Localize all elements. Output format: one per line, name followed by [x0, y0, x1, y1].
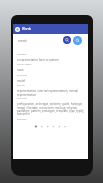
- button[interactable]: Pronounce: [73, 36, 82, 45]
- staticText: a representative form or pattern: [17, 58, 84, 62]
- other: App icon: [15, 27, 20, 32]
- staticText: Has Types: [17, 97, 84, 100]
- staticText: Part Of Speech: [17, 63, 84, 66]
- staticText: model: [17, 79, 84, 83]
- staticText: representation, internal representation,…: [17, 89, 84, 96]
- staticText: Synonyms: [17, 74, 84, 77]
- button[interactable]: Search: [63, 36, 71, 44]
- staticText: prefiguration, archetype, epitome, guide…: [17, 102, 84, 115]
- staticText: noun: [17, 68, 84, 72]
- staticText: Examples: [17, 118, 84, 121]
- staticText: Words: [22, 27, 32, 31]
- button[interactable]: App icon: [13, 24, 88, 34]
- staticText: search: [18, 39, 85, 43]
- staticText: Definition: [17, 53, 84, 56]
- staticText: Type Of: [17, 84, 84, 87]
